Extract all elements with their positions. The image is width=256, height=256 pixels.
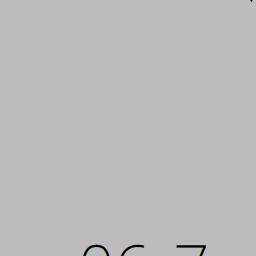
staticText: 06 (78, 224, 150, 256)
staticText: 7 (173, 224, 209, 256)
